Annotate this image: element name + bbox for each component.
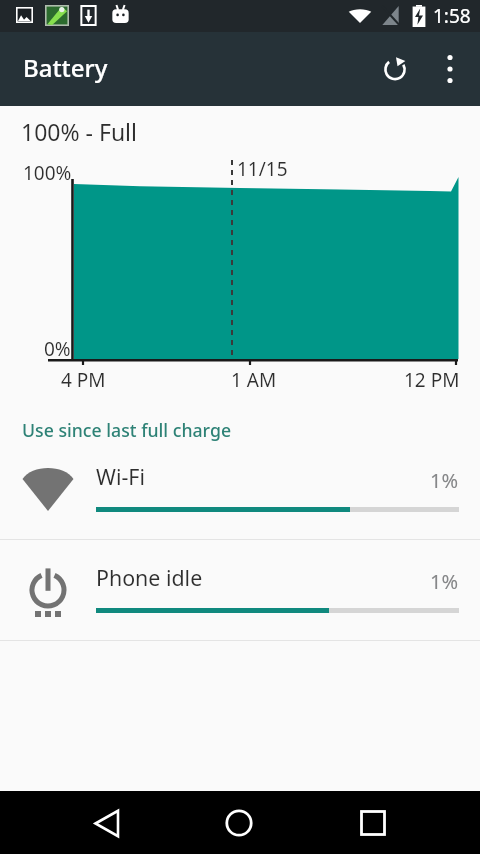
staticText: 1 AM (231, 367, 277, 393)
staticText: 100% - Full (21, 116, 137, 147)
button[interactable]: Recent apps (343, 791, 403, 854)
staticText: 0% (44, 336, 71, 362)
staticText: Battery (23, 51, 108, 84)
button[interactable]: Home (209, 791, 269, 854)
button[interactable]: Wi-Fi (0, 439, 480, 539)
staticText: 12 PM (404, 367, 460, 393)
button[interactable]: Refresh (371, 45, 419, 93)
staticText: Phone idle (96, 563, 203, 592)
staticText: Use since last full charge (22, 418, 232, 442)
button[interactable]: Phone idle (0, 540, 480, 640)
staticText: 1:58 (433, 3, 471, 29)
staticText: 100% (23, 160, 72, 186)
staticText: Wi-Fi (96, 462, 145, 491)
staticText: 1% (430, 467, 459, 494)
staticText: 11/15 (237, 156, 288, 182)
button[interactable]: Back (78, 791, 138, 854)
staticText: 4 PM (61, 367, 106, 393)
button[interactable]: More options (426, 45, 474, 93)
staticText: 1% (430, 568, 459, 595)
